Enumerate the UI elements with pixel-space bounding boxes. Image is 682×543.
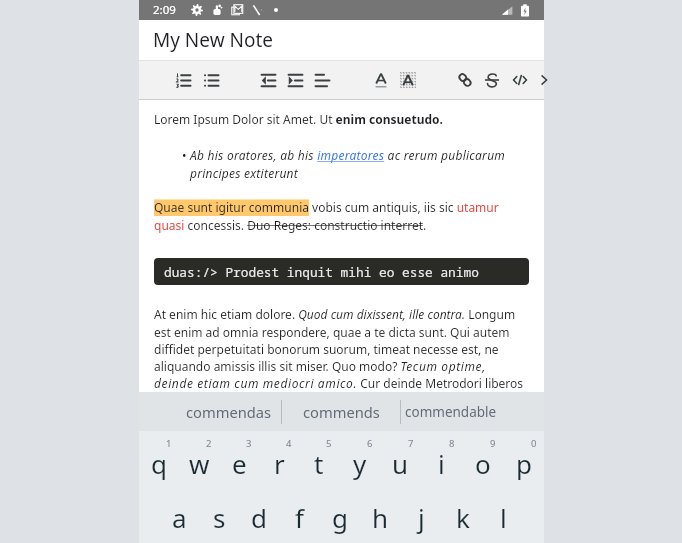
button[interactable]: More options	[530, 61, 557, 99]
button[interactable]: Increase indent	[282, 61, 309, 99]
staticText: commends	[303, 402, 380, 422]
staticText: commendas	[186, 402, 272, 422]
staticText: f	[295, 500, 304, 535]
button[interactable]: h	[360, 487, 401, 543]
button[interactable]: Text colour	[367, 61, 394, 99]
button[interactable]: 5	[299, 431, 339, 487]
staticText: q	[151, 446, 167, 481]
staticText: Ab his oratores, ab his imperatores ac r…	[190, 147, 529, 181]
staticText: My New Note	[153, 27, 274, 53]
button[interactable]: duas:/> Prodest inquit mihi eo esse anim…	[154, 258, 529, 285]
staticText: w	[189, 446, 210, 481]
button[interactable]: 6	[339, 431, 380, 487]
button[interactable]: s	[199, 487, 239, 543]
button[interactable]: Align	[309, 61, 336, 99]
button[interactable]: 8	[421, 431, 462, 487]
staticText: k	[456, 500, 470, 535]
staticText: j	[418, 500, 425, 535]
button[interactable]: Decrease indent	[255, 61, 282, 99]
staticText: i	[438, 446, 445, 481]
staticText: a	[172, 500, 187, 535]
staticText: e	[232, 446, 247, 481]
staticText: l	[500, 500, 507, 535]
staticText: p	[516, 446, 532, 481]
staticText: 4	[286, 437, 292, 450]
staticText: Quae sunt igitur communia vobis cum anti…	[154, 199, 529, 233]
staticText: duas:/> Prodest inquit mihi eo esse anim…	[164, 263, 479, 280]
button[interactable]: Insert link	[451, 61, 478, 99]
button[interactable]: j	[401, 487, 442, 543]
staticText: 0	[531, 437, 537, 450]
staticText: g	[332, 500, 348, 535]
button[interactable]: Strikethrough	[478, 61, 505, 99]
staticText: 2	[206, 437, 212, 450]
button[interactable]: 3	[219, 431, 259, 487]
staticText: r	[274, 446, 285, 481]
button[interactable]: l	[483, 487, 524, 543]
staticText: 7	[408, 437, 414, 450]
button[interactable]: 4	[259, 431, 299, 487]
button[interactable]: commendas	[183, 392, 275, 431]
staticText: o	[475, 446, 491, 481]
staticText: 5	[326, 437, 332, 450]
button[interactable]: 0	[503, 431, 544, 487]
staticText: 1	[166, 437, 172, 450]
staticText: 6	[367, 437, 373, 450]
button[interactable]: commends	[296, 392, 387, 431]
staticText: u	[392, 446, 409, 481]
staticText: 3	[246, 437, 252, 450]
button[interactable]: Highlight colour	[394, 61, 421, 99]
button[interactable]: 2	[179, 431, 219, 487]
button[interactable]: 7	[380, 431, 421, 487]
staticText: y	[353, 446, 367, 481]
staticText: 8	[449, 437, 455, 450]
button[interactable]: f	[279, 487, 319, 543]
button[interactable]: 9	[462, 431, 503, 487]
staticText: commendable	[405, 403, 497, 421]
button[interactable]: d	[239, 487, 279, 543]
button[interactable]: commendable	[405, 392, 497, 431]
button[interactable]: a	[159, 487, 199, 543]
staticText: t	[314, 446, 324, 481]
staticText: Lorem Ipsum Dolor sit Amet. Ut enim cons…	[154, 111, 443, 127]
staticText: At enim hic etiam dolore. Quod cum dixis…	[154, 306, 529, 392]
button[interactable]: k	[442, 487, 483, 543]
button[interactable]: 1	[139, 431, 179, 487]
staticText: 9	[490, 437, 496, 450]
button[interactable]: g	[319, 487, 360, 543]
staticText: 2:09	[153, 2, 176, 18]
button[interactable]: Numbered list	[170, 61, 197, 99]
staticText: •	[182, 147, 190, 163]
staticText: h	[372, 500, 389, 535]
button[interactable]: Bulleted list	[198, 61, 225, 99]
button[interactable]: My New Note	[139, 20, 544, 60]
staticText: s	[213, 500, 226, 535]
button[interactable]: Code block	[506, 61, 533, 99]
staticText: d	[251, 500, 267, 535]
